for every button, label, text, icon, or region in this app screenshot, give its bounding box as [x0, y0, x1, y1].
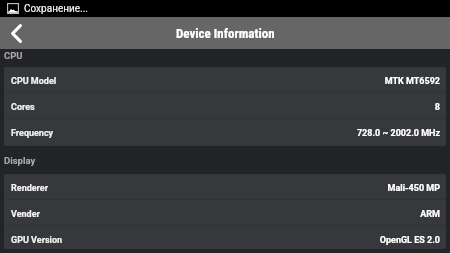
staticText: Mali-450 MP: [387, 183, 440, 194]
button[interactable]: Frequency: [4, 119, 446, 145]
staticText: Vender: [11, 209, 40, 220]
staticText: Cores: [11, 102, 35, 113]
staticText: GPU Version: [11, 235, 63, 246]
staticText: Сохранение...: [24, 3, 88, 15]
staticText: Display: [4, 155, 36, 166]
button[interactable]: Renderer: [4, 174, 446, 200]
staticText: CPU: [4, 50, 23, 61]
button[interactable]: Cores: [4, 93, 446, 119]
staticText: CPU Model: [11, 76, 57, 87]
button[interactable]: GPU Version: [4, 226, 446, 249]
button[interactable]: Back: [0, 17, 32, 49]
button[interactable]: CPU Model: [4, 67, 446, 93]
staticText: Frequency: [11, 128, 54, 139]
staticText: MTK MT6592: [384, 76, 440, 87]
staticText: ARM: [420, 209, 440, 220]
staticText: Device Information: [176, 26, 275, 41]
button[interactable]: Vender: [4, 200, 446, 226]
staticText: Renderer: [11, 183, 48, 194]
staticText: 8: [434, 102, 440, 113]
staticText: OpenGL ES 2.0: [379, 235, 440, 246]
staticText: 728.0 ~ 2002.0 MHz: [356, 128, 440, 139]
